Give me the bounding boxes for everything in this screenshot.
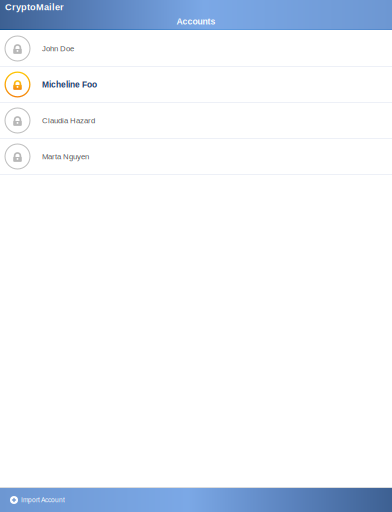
staticText: John Doe (42, 44, 74, 53)
button[interactable]: Claudia Hazard (0, 103, 392, 139)
staticText: Claudia Hazard (42, 116, 95, 125)
button[interactable]: Import Account (0, 488, 392, 512)
staticText: Marta Nguyen (42, 152, 89, 161)
button[interactable]: Marta Nguyen (0, 139, 392, 175)
button[interactable]: Micheline Foo (0, 67, 392, 103)
staticText: Accounts (176, 17, 215, 26)
button[interactable]: John Doe (0, 31, 392, 67)
staticText: Micheline Foo (42, 80, 97, 89)
staticText: Import Account (21, 496, 65, 504)
staticText: CryptoMailer (5, 2, 64, 12)
